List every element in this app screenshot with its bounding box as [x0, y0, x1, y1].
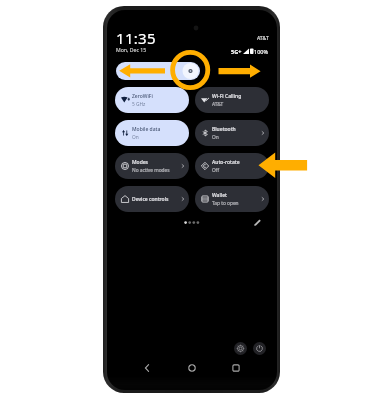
button[interactable]: Power [253, 342, 266, 355]
button[interactable]: Auto-rotate [195, 153, 269, 179]
staticText: On [132, 134, 139, 141]
staticText: Wallet [212, 192, 227, 199]
staticText: Tap to open [212, 200, 239, 207]
staticText: Auto-rotate [212, 159, 240, 166]
staticText: Mobile data [132, 126, 161, 133]
staticText: Mon, Dec 15 [116, 46, 147, 53]
button[interactable]: Mobile data [115, 120, 189, 146]
staticText: 5 GHz [132, 101, 146, 108]
staticText: Modes [132, 159, 149, 166]
button[interactable]: Device controls [115, 186, 189, 212]
button[interactable]: Home [184, 360, 200, 376]
button[interactable]: Wallet [195, 186, 269, 212]
staticText: Wi-Fi Calling [212, 93, 242, 100]
button[interactable]: Recents [228, 360, 244, 376]
staticText: AT&T [257, 35, 269, 42]
button[interactable]: Modes [115, 153, 189, 179]
staticText: Off [212, 167, 220, 174]
staticText: Bluetooth [212, 126, 236, 133]
staticText: On [212, 134, 219, 141]
staticText: No active modes [132, 167, 170, 174]
button[interactable]: Back [139, 360, 155, 376]
button[interactable]: Bluetooth [195, 120, 269, 146]
staticText: Device controls [132, 196, 169, 203]
button[interactable]: Settings [234, 342, 247, 355]
button[interactable]: Wi-Fi Calling [195, 87, 269, 113]
staticText: 5G+ [231, 48, 242, 55]
staticText: 11:35 [116, 28, 156, 48]
button[interactable]: ZeroWiFi [115, 87, 189, 113]
staticText: AT&T [212, 101, 224, 108]
staticText: 100% [254, 48, 269, 55]
button[interactable] [116, 62, 200, 80]
staticText: ZeroWiFi [132, 93, 153, 100]
